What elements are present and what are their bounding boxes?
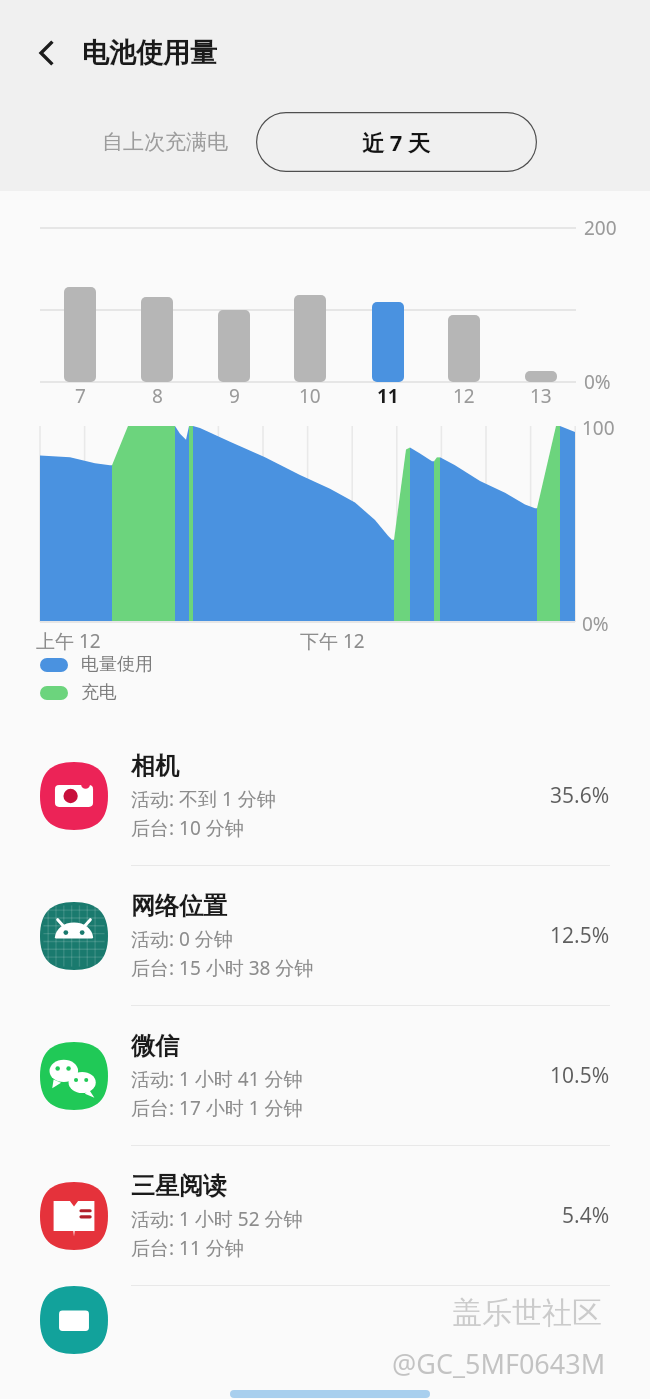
staticText: 12 [453, 383, 475, 409]
staticText: 8 [152, 383, 163, 409]
staticText: 活动: 不到 1 分钟 [131, 786, 276, 812]
staticText: 11 [377, 383, 399, 409]
staticText: 活动: 1 小时 52 分钟 [131, 1206, 303, 1232]
staticText: 13 [530, 383, 552, 409]
staticText: 电池使用量 [82, 36, 217, 70]
staticText: 0% [584, 369, 611, 395]
staticText: 5.4% [562, 1201, 610, 1230]
staticText: 网络位置 [131, 891, 227, 921]
staticText: 近 7 天 [362, 127, 431, 157]
staticText: 0% [582, 611, 609, 637]
staticText: 盖乐世社区 [452, 1294, 602, 1332]
staticText: 微信 [131, 1031, 179, 1061]
staticText: 35.6% [550, 781, 610, 810]
button[interactable]: 近 7 天 [256, 112, 537, 172]
button[interactable]: 返回 [24, 30, 70, 76]
button[interactable]: 网络位置 [0, 866, 650, 1005]
staticText: 10.5% [550, 1061, 610, 1090]
staticText: 下午 12 [300, 628, 365, 654]
staticText: 自上次充满电 [102, 129, 228, 155]
staticText: 后台: 15 小时 38 分钟 [131, 955, 314, 981]
staticText: 100 [582, 415, 615, 441]
staticText: @GC_5MF0643M [392, 1345, 606, 1382]
staticText: 10 [299, 383, 321, 409]
staticText: 7 [75, 383, 86, 409]
staticText: 后台: 10 分钟 [131, 815, 244, 841]
button[interactable]: 相机 [0, 726, 650, 865]
button[interactable] [0, 1286, 650, 1399]
staticText: 充电 [81, 681, 117, 704]
staticText: 三星阅读 [131, 1171, 227, 1201]
staticText: 后台: 17 小时 1 分钟 [131, 1095, 303, 1121]
staticText: 相机 [131, 751, 179, 781]
staticText: 12.5% [550, 921, 610, 950]
staticText: 活动: 0 分钟 [131, 926, 233, 952]
button[interactable]: 微信 [0, 1006, 650, 1145]
staticText: 9 [229, 383, 240, 409]
staticText: 200 [584, 215, 617, 241]
staticText: 电量使用 [81, 653, 153, 676]
button[interactable]: 自上次充满电 [96, 115, 234, 169]
button[interactable]: 三星阅读 [0, 1146, 650, 1285]
staticText: 活动: 1 小时 41 分钟 [131, 1066, 303, 1092]
staticText: 后台: 11 分钟 [131, 1235, 244, 1261]
staticText: 上午 12 [36, 628, 101, 654]
